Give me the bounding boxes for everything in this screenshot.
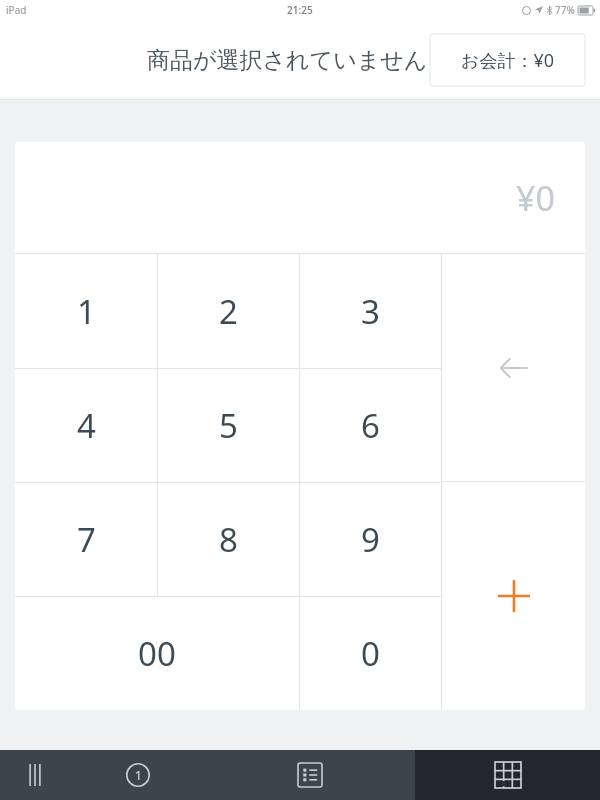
- button[interactable]: 0: [300, 597, 441, 710]
- button[interactable]: 4: [15, 369, 157, 482]
- button[interactable]: Keypad: [415, 750, 600, 800]
- button[interactable]: Menu: [0, 750, 70, 800]
- button[interactable]: 3: [300, 254, 441, 368]
- staticText: 3: [361, 289, 380, 334]
- button[interactable]: 1: [15, 254, 157, 368]
- staticText: 商品が選択されていません: [147, 46, 428, 75]
- button[interactable]: List: [205, 750, 415, 800]
- staticText: 0: [361, 631, 380, 676]
- staticText: 7: [77, 517, 96, 562]
- staticText: お会計：¥0: [461, 48, 555, 73]
- button[interactable]: 5: [158, 369, 299, 482]
- button[interactable]: 2: [158, 254, 299, 368]
- staticText: 6: [361, 403, 380, 448]
- button[interactable]: 9: [300, 483, 441, 596]
- staticText: 77%: [555, 3, 575, 17]
- staticText: 21:25: [287, 3, 313, 17]
- button[interactable]: お会計：¥0: [430, 34, 585, 86]
- staticText: 2: [219, 289, 238, 334]
- button[interactable]: 8: [158, 483, 299, 596]
- staticText: 1: [135, 767, 142, 783]
- staticText: iPad: [6, 3, 27, 17]
- button[interactable]: Backspace: [442, 254, 585, 481]
- staticText: 1: [77, 289, 96, 334]
- button[interactable]: 00: [15, 597, 299, 710]
- button[interactable]: 7: [15, 483, 157, 596]
- staticText: 5: [219, 403, 238, 448]
- button[interactable]: 6: [300, 369, 441, 482]
- button[interactable]: Add: [442, 482, 585, 710]
- staticText: 8: [219, 517, 238, 562]
- staticText: 4: [77, 403, 96, 448]
- button[interactable]: Cart 1 item: [70, 750, 205, 800]
- staticText: 9: [361, 517, 380, 562]
- staticText: 00: [138, 631, 176, 676]
- staticText: ¥0: [516, 175, 555, 221]
